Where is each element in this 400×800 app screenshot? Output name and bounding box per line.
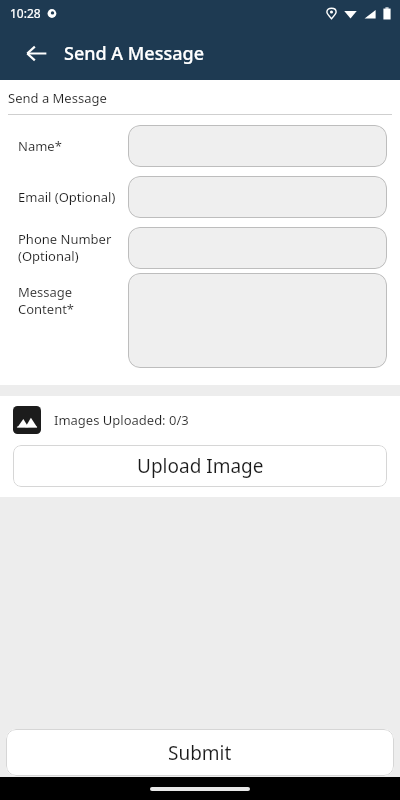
staticText: Images Uploaded: 0/3 [54,411,189,429]
button[interactable]: Submit [6,729,394,776]
staticText: Message Content* [18,283,75,318]
staticText: Name* [18,137,62,155]
button[interactable]: Text field [128,176,387,218]
button[interactable]: Text field [128,273,387,368]
staticText: Upload Image [137,453,264,479]
button[interactable]: Text field [128,227,387,269]
staticText: Submit [168,740,232,766]
staticText: 10:28 [10,5,41,21]
staticText: Email (Optional) [18,188,116,206]
button[interactable]: Text field [128,125,387,167]
staticText: Send A Message [64,41,204,66]
staticText: Send a Message [8,89,107,107]
staticText: Phone Number (Optional) [18,230,112,265]
button[interactable]: Back [14,31,58,75]
button[interactable]: Upload Image [13,445,387,487]
